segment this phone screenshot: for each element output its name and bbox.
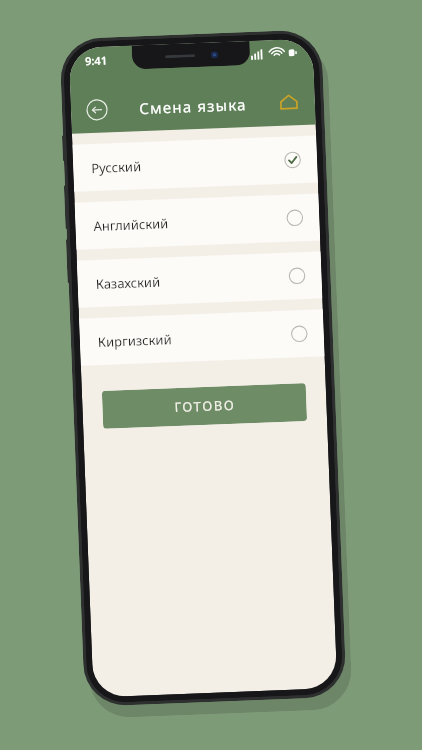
- staticText: Казахский: [95, 273, 161, 293]
- button[interactable]: Home: [274, 88, 303, 117]
- button[interactable]: Казахский: [77, 251, 322, 308]
- button[interactable]: Киргизский: [79, 309, 325, 366]
- staticText: ГОТОВО: [174, 396, 236, 416]
- button[interactable]: Back: [82, 95, 112, 124]
- staticText: Русский: [91, 157, 142, 177]
- staticText: 9:41: [85, 52, 107, 68]
- button[interactable]: ГОТОВО: [102, 383, 307, 429]
- staticText: Киргизский: [98, 330, 172, 351]
- button[interactable]: Английский: [75, 193, 320, 250]
- button[interactable]: Русский: [72, 135, 318, 192]
- staticText: Английский: [93, 214, 169, 235]
- staticText: Смена языка: [111, 93, 275, 119]
